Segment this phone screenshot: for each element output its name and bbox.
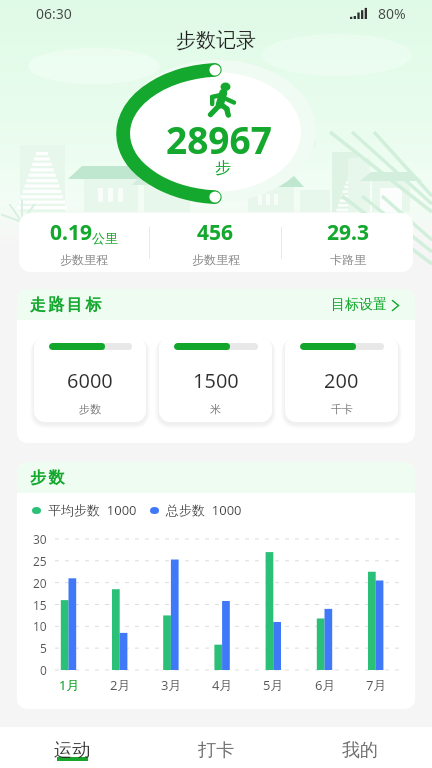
staticText: 步数里程 xyxy=(192,252,240,267)
staticText: 总步数 1000 xyxy=(166,501,242,519)
staticText: 2月 xyxy=(110,676,131,694)
staticText: 20 xyxy=(33,575,47,591)
staticText: 步数 xyxy=(79,402,101,416)
staticText: 7月 xyxy=(366,676,387,694)
staticText: 1500 xyxy=(193,367,239,394)
staticText: 29.3 xyxy=(327,218,369,247)
button[interactable]: 我的 xyxy=(288,727,432,768)
button[interactable]: 打卡 xyxy=(144,727,288,768)
staticText: 25 xyxy=(33,553,47,569)
staticText: 5月 xyxy=(263,676,284,694)
staticText: 我的 xyxy=(342,739,378,762)
staticText: 目标设置 xyxy=(331,296,387,314)
staticText: 30 xyxy=(33,531,47,547)
staticText: 运动 xyxy=(54,739,90,762)
staticText: 4月 xyxy=(212,676,233,694)
staticText: 6月 xyxy=(315,676,336,694)
button[interactable]: 运动 xyxy=(0,727,144,768)
staticText: 卡路里 xyxy=(330,252,366,267)
staticText: 80% xyxy=(378,4,406,23)
staticText: 3月 xyxy=(161,676,182,694)
staticText: 456 xyxy=(197,218,234,247)
staticText: 0 xyxy=(40,662,47,678)
staticText: 200 xyxy=(324,367,359,394)
staticText: 平均步数 1000 xyxy=(48,501,137,519)
button[interactable]: 1500 xyxy=(159,337,272,422)
staticText: 打卡 xyxy=(198,739,234,762)
staticText: 步数里程 xyxy=(60,252,108,267)
staticText: 06:30 xyxy=(36,4,72,23)
staticText: 15 xyxy=(33,597,47,613)
staticText: 千卡 xyxy=(331,402,353,416)
staticText: 步数记录 xyxy=(176,28,256,53)
staticText: 米 xyxy=(210,402,221,416)
staticText: 1月 xyxy=(59,676,80,694)
staticText: 0.19 xyxy=(50,218,92,247)
button[interactable]: 200 xyxy=(285,337,398,422)
staticText: 步 xyxy=(215,158,231,178)
button[interactable]: 6000 xyxy=(34,337,146,422)
staticText: 6000 xyxy=(67,367,113,394)
staticText: 10 xyxy=(33,618,47,634)
staticText: 走路目标 xyxy=(30,295,104,315)
staticText: 5 xyxy=(40,640,47,656)
staticText: 步数 xyxy=(30,468,67,488)
staticText: 公里 xyxy=(92,230,118,246)
button[interactable]: 目标设置 xyxy=(327,292,403,318)
staticText: 28967 xyxy=(166,114,272,164)
